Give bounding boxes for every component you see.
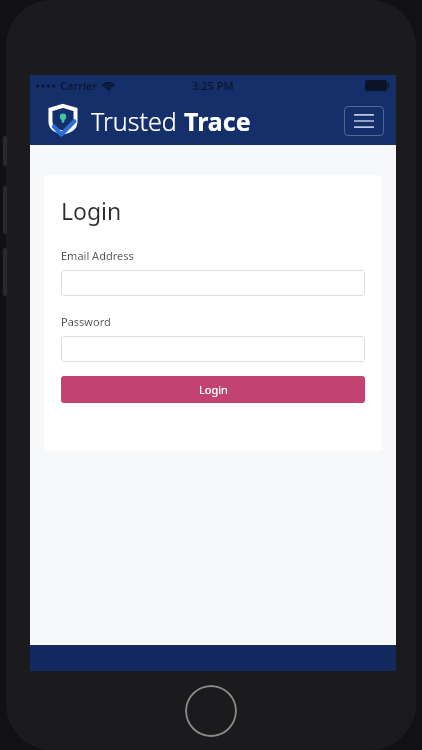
staticText: Login (199, 382, 228, 397)
staticText: 3:25 PM (192, 78, 234, 93)
staticText: Email Address (61, 248, 134, 263)
staticText: Carrier (60, 78, 98, 93)
button[interactable]: Menu (344, 106, 384, 136)
staticText: Trace (184, 104, 251, 138)
button[interactable] (61, 336, 365, 362)
button[interactable]: Login (61, 376, 365, 403)
staticText: Password (61, 314, 111, 329)
staticText: Login (61, 195, 122, 226)
button[interactable] (61, 270, 365, 296)
button[interactable]: Home (185, 685, 237, 737)
staticText: Trusted (91, 104, 184, 138)
